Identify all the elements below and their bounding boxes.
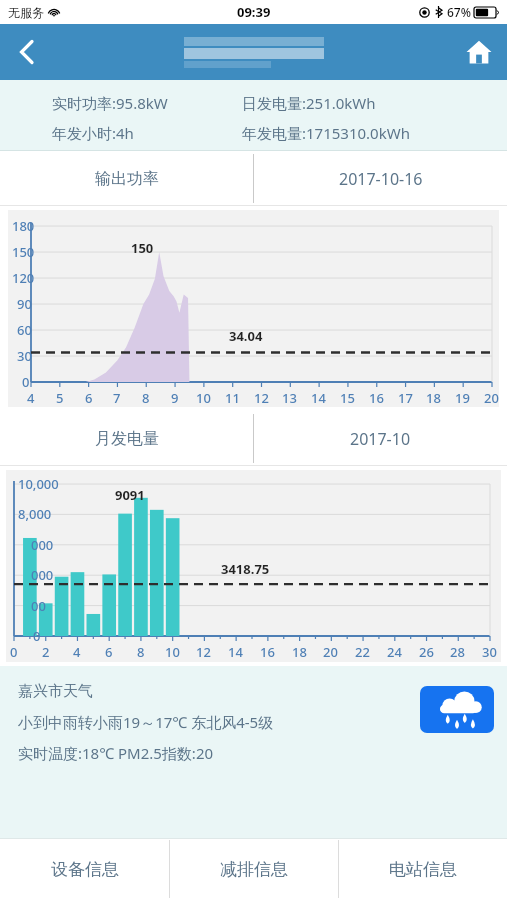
staticText: 11 bbox=[225, 389, 240, 407]
button[interactable]: 设备信息 bbox=[0, 838, 169, 900]
staticText: 9 bbox=[171, 389, 179, 407]
staticText: 67% bbox=[447, 4, 471, 20]
staticText: 5 bbox=[56, 389, 64, 407]
staticText: 年发电量:1715310.0kWh bbox=[242, 123, 410, 143]
staticText: 10,000 bbox=[18, 475, 59, 493]
staticText: 000 bbox=[31, 536, 54, 554]
staticText: 减排信息 bbox=[220, 859, 288, 880]
staticText: 24 bbox=[387, 643, 402, 661]
staticText: 180 bbox=[12, 217, 35, 235]
staticText: 8 bbox=[137, 643, 145, 661]
button[interactable]: 2017-10 bbox=[254, 411, 507, 466]
staticText: 无服务 bbox=[8, 5, 44, 20]
staticText: 30 bbox=[17, 347, 32, 365]
button[interactable]: 减排信息 bbox=[170, 838, 338, 900]
staticText: 19 bbox=[455, 389, 470, 407]
staticText: 17 bbox=[398, 389, 413, 407]
staticText: 实时温度:18℃ PM2.5指数:20 bbox=[18, 743, 214, 763]
button[interactable]: Back bbox=[0, 26, 52, 78]
staticText: 2017-10 bbox=[350, 428, 411, 450]
staticText: 12 bbox=[196, 643, 211, 661]
staticText: 6 bbox=[105, 643, 113, 661]
button[interactable]: 电站信息 bbox=[339, 838, 507, 900]
staticText: 26 bbox=[419, 643, 434, 661]
staticText: 输出功率 bbox=[95, 169, 159, 189]
staticText: 16 bbox=[260, 643, 275, 661]
staticText: 7 bbox=[113, 389, 121, 407]
staticText: 0 bbox=[10, 643, 18, 661]
staticText: 12 bbox=[254, 389, 269, 407]
button[interactable]: 输出功率 bbox=[0, 151, 253, 206]
staticText: 60 bbox=[17, 321, 32, 339]
staticText: 4 bbox=[27, 389, 35, 407]
staticText: 8 bbox=[142, 389, 150, 407]
staticText: 年发小时:4h bbox=[52, 123, 134, 143]
staticText: 0 bbox=[33, 627, 41, 645]
button[interactable]: 2017-10-16 bbox=[254, 151, 507, 206]
staticText: 0 bbox=[22, 373, 30, 391]
staticText: 9091 bbox=[115, 486, 145, 504]
staticText: 16 bbox=[369, 389, 384, 407]
staticText: 20 bbox=[323, 643, 338, 661]
staticText: 6 bbox=[85, 389, 93, 407]
staticText: 28 bbox=[450, 643, 465, 661]
staticText: 09:39 bbox=[237, 3, 271, 21]
staticText: 实时功率:95.8kW bbox=[52, 93, 168, 113]
staticText: 8,000 bbox=[18, 505, 52, 523]
staticText: 34.04 bbox=[229, 327, 263, 345]
staticText: 3418.75 bbox=[221, 560, 270, 578]
staticText: 30 bbox=[482, 643, 497, 661]
button[interactable]: 月发电量 bbox=[0, 411, 253, 466]
staticText: 10 bbox=[165, 643, 180, 661]
staticText: 150 bbox=[131, 239, 154, 257]
staticText: 嘉兴市天气 bbox=[18, 682, 93, 701]
button[interactable]: Weather bbox=[420, 686, 494, 733]
staticText: 小到中雨转小雨19～17℃ 东北风4-5级 bbox=[18, 712, 274, 732]
button[interactable]: Home bbox=[451, 24, 507, 80]
staticText: 设备信息 bbox=[51, 859, 119, 880]
staticText: 10 bbox=[196, 389, 211, 407]
staticText: 20 bbox=[484, 389, 499, 407]
staticText: 000 bbox=[31, 566, 54, 584]
staticText: 13 bbox=[282, 389, 297, 407]
staticText: 18 bbox=[292, 643, 307, 661]
staticText: 14 bbox=[228, 643, 243, 661]
staticText: 150 bbox=[12, 243, 35, 261]
staticText: 00 bbox=[31, 597, 46, 615]
staticText: 15 bbox=[340, 389, 355, 407]
staticText: 120 bbox=[12, 269, 35, 287]
staticText: 2017-10-16 bbox=[339, 168, 423, 190]
staticText: 电站信息 bbox=[389, 859, 457, 880]
staticText: 日发电量:251.0kWh bbox=[242, 93, 376, 113]
staticText: 2 bbox=[42, 643, 50, 661]
staticText: 90 bbox=[17, 295, 32, 313]
staticText: 月发电量 bbox=[95, 429, 159, 449]
staticText: 4 bbox=[73, 643, 81, 661]
staticText: 14 bbox=[311, 389, 326, 407]
staticText: 18 bbox=[426, 389, 441, 407]
staticText: 22 bbox=[355, 643, 370, 661]
